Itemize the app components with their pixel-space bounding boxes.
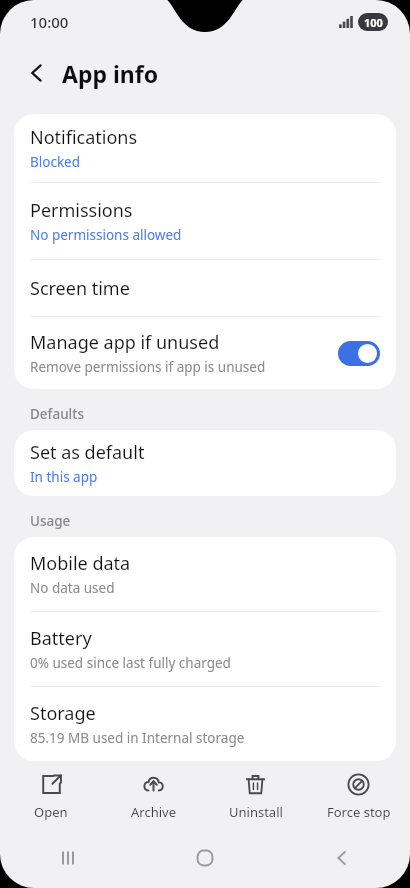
button[interactable]: Recents — [0, 833, 136, 883]
staticText: Screen time — [30, 276, 130, 301]
button[interactable]: Storage — [14, 687, 396, 761]
staticText: 85.19 MB used in Internal storage — [30, 729, 245, 747]
staticText: 100 — [364, 15, 383, 30]
button[interactable]: Force stop — [307, 761, 410, 833]
staticText: Set as default — [30, 440, 145, 465]
button[interactable]: Open — [0, 761, 102, 833]
staticText: No permissions allowed — [30, 226, 182, 244]
staticText: In this app — [30, 468, 98, 486]
staticText: Permissions — [30, 198, 133, 223]
button[interactable]: Uninstall — [204, 761, 307, 833]
button[interactable]: Back — [20, 56, 54, 90]
button[interactable]: Archive — [102, 761, 204, 833]
staticText: Blocked — [30, 153, 81, 171]
staticText: 10:00 — [30, 12, 69, 32]
button[interactable]: Permissions — [14, 183, 396, 259]
staticText: No data used — [30, 579, 115, 597]
button[interactable]: Home — [136, 833, 273, 883]
staticText: Defaults — [30, 405, 84, 423]
staticText: Archive — [131, 803, 176, 821]
button[interactable]: Manage app if unused toggle — [338, 341, 380, 366]
staticText: 0% used since last fully charged — [30, 654, 231, 672]
staticText: Notifications — [30, 125, 138, 150]
staticText: Battery — [30, 626, 92, 651]
button[interactable]: Screen time — [14, 260, 396, 316]
staticText: Force stop — [327, 803, 391, 821]
button[interactable]: Mobile data — [14, 537, 396, 611]
staticText: Uninstall — [229, 803, 283, 821]
staticText: Manage app if unused — [30, 330, 220, 355]
button[interactable]: Notifications — [14, 114, 396, 182]
staticText: App info — [62, 58, 159, 89]
staticText: Storage — [30, 701, 96, 726]
button[interactable]: Back — [273, 833, 410, 883]
button[interactable]: Battery — [14, 612, 396, 686]
staticText: Mobile data — [30, 551, 131, 576]
staticText: Usage — [30, 512, 71, 530]
button[interactable]: Set as default — [14, 430, 396, 496]
staticText: Remove permissions if app is unused — [30, 358, 266, 376]
staticText: Open — [34, 803, 68, 821]
button[interactable]: Manage app if unused — [14, 317, 396, 389]
